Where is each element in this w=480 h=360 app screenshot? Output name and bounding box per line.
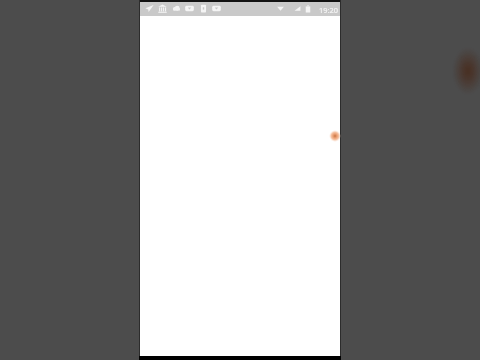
- button[interactable]: Add: [329, 130, 341, 142]
- staticText: 19:20: [319, 5, 338, 15]
